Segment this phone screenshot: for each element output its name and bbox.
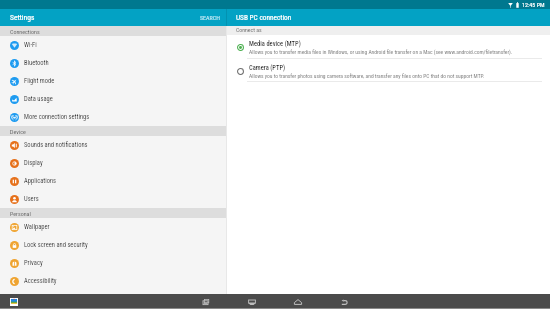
staticText: Wi-Fi (24, 41, 37, 49)
button[interactable]: Camera (PTP) (227, 59, 550, 81)
staticText: USB PC connection (236, 13, 292, 22)
button[interactable]: Display (0, 154, 226, 172)
button[interactable]: Home (293, 297, 303, 307)
staticText: Display (24, 159, 43, 167)
button[interactable]: Sounds and notifications (0, 136, 226, 154)
button[interactable]: Wallpaper (0, 218, 226, 236)
button[interactable]: Privacy (0, 254, 226, 272)
button[interactable]: Applications (0, 172, 226, 190)
staticText: Camera (PTP) (249, 64, 286, 72)
button[interactable]: Notification (10, 298, 18, 306)
button[interactable]: Recent apps (201, 297, 211, 307)
staticText: Allows you to transfer photos using came… (249, 73, 485, 79)
staticText: Data usage (24, 95, 53, 103)
staticText: Flight mode (24, 77, 55, 85)
button[interactable]: Lock screen and security (0, 236, 226, 254)
staticText: Media device (MTP) (249, 40, 301, 48)
button[interactable]: Users (0, 190, 226, 208)
button[interactable]: Bluetooth (0, 54, 226, 72)
staticText: Privacy (24, 259, 43, 267)
staticText: Allows you to transfer media files in Wi… (249, 49, 513, 55)
button[interactable]: Flight mode (0, 72, 226, 90)
staticText: Lock screen and security (24, 241, 88, 249)
staticText: Personal (10, 210, 31, 217)
staticText: Bluetooth (24, 59, 49, 67)
button[interactable]: SEARCH (192, 10, 226, 25)
button[interactable]: Screenshot (247, 297, 257, 307)
button[interactable]: More connection settings (0, 108, 226, 126)
staticText: Connect as (236, 27, 262, 34)
button[interactable]: Accessibility (0, 272, 226, 290)
staticText: Connections (10, 28, 40, 35)
button[interactable]: Media device (MTP) (227, 35, 550, 58)
staticText: Wallpaper (24, 223, 50, 231)
staticText: 12:45 PM (522, 1, 545, 8)
staticText: Device (10, 128, 26, 135)
staticText: More connection settings (24, 113, 90, 121)
staticText: SEARCH (200, 14, 220, 21)
staticText: Sounds and notifications (24, 141, 88, 149)
staticText: Accessibility (24, 277, 57, 285)
staticText: Applications (24, 177, 57, 185)
staticText: Users (24, 195, 39, 203)
button[interactable]: Wi-Fi (0, 36, 226, 54)
staticText: Settings (10, 13, 35, 22)
button[interactable]: Data usage (0, 90, 226, 108)
button[interactable]: Back (339, 297, 349, 307)
